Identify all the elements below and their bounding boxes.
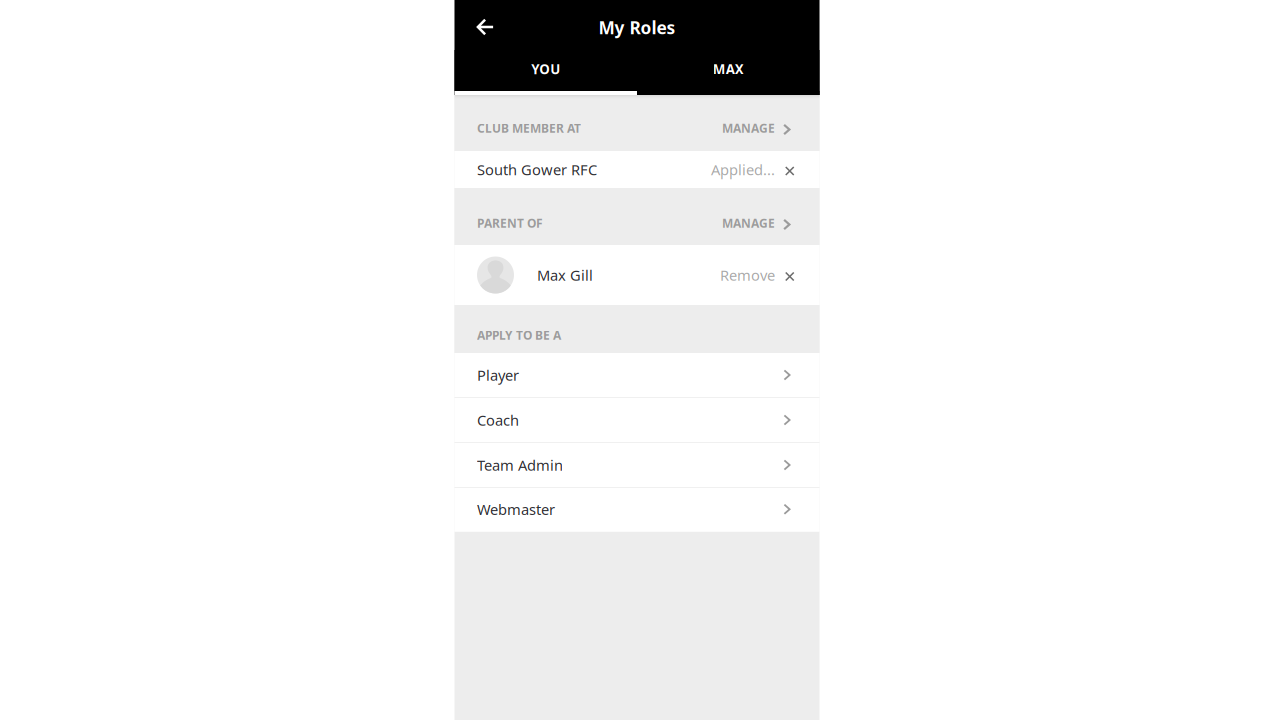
- staticText: MANAGE: [722, 215, 775, 231]
- staticText: PARENT OF: [477, 215, 543, 231]
- button[interactable]: MANAGE: [722, 116, 790, 140]
- staticText: APPLY TO BE A: [477, 327, 561, 343]
- staticText: Coach: [477, 410, 519, 430]
- staticText: My Roles: [598, 16, 675, 39]
- button[interactable]: Back: [463, 4, 508, 49]
- button[interactable]: Webmaster: [454, 488, 819, 531]
- button[interactable]: MANAGE: [722, 211, 790, 235]
- button[interactable]: Player: [454, 353, 819, 398]
- button[interactable]: South Gower RFC: [454, 151, 819, 188]
- button[interactable]: MAX: [637, 50, 819, 95]
- staticText: Team Admin: [477, 455, 563, 475]
- staticText: Applied...: [711, 160, 775, 179]
- staticText: South Gower RFC: [477, 160, 597, 179]
- staticText: Player: [477, 365, 519, 385]
- button[interactable]: Max Gill: [454, 245, 819, 305]
- staticText: YOU: [531, 60, 560, 78]
- staticText: Webmaster: [477, 499, 555, 519]
- button[interactable]: Coach: [454, 398, 819, 443]
- staticText: CLUB MEMBER AT: [477, 120, 581, 136]
- staticText: Max Gill: [537, 265, 593, 285]
- staticText: MAX: [713, 60, 744, 78]
- button[interactable]: Team Admin: [454, 443, 819, 488]
- staticText: Remove: [720, 265, 775, 285]
- button[interactable]: YOU: [454, 50, 637, 95]
- staticText: MANAGE: [722, 120, 775, 136]
